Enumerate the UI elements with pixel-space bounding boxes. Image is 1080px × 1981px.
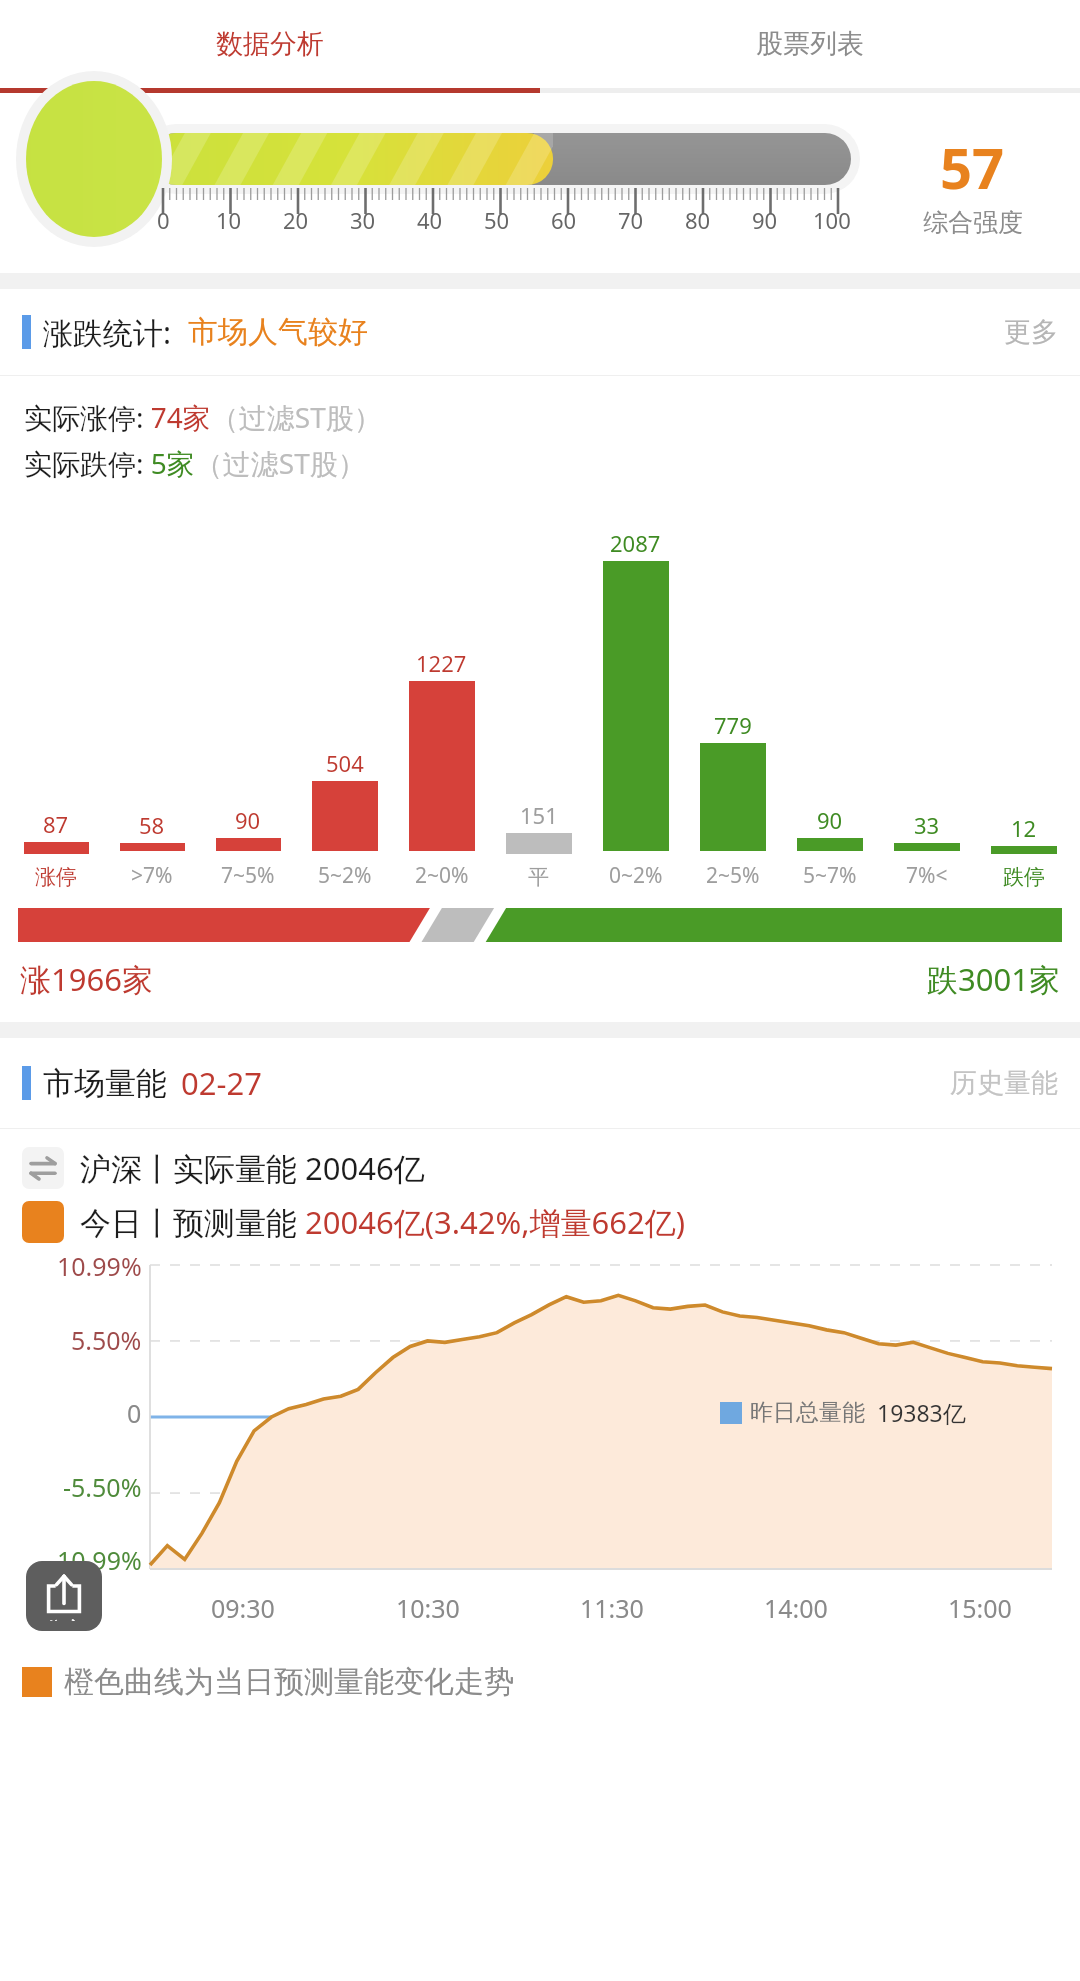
staticText: 30 [350, 205, 376, 235]
staticText: 0 [127, 1396, 142, 1430]
staticText: 7%< [906, 861, 948, 890]
staticText: 历史量能 [950, 1066, 1058, 1100]
staticText: 更多 [1004, 315, 1058, 349]
staticText: 19383亿 [877, 1397, 966, 1428]
staticText: 10:30 [396, 1591, 460, 1625]
staticText: 市场人气较好 [188, 313, 368, 351]
staticText: 14:00 [764, 1591, 828, 1625]
staticText: 平 [528, 864, 549, 890]
staticText: 涨跌统计: [43, 312, 172, 353]
staticText: 50 [484, 205, 510, 235]
staticText: 151 [520, 800, 558, 830]
staticText: 实际涨停: 74家（过滤ST股） [24, 398, 382, 436]
staticText: 7~5% [221, 861, 275, 890]
staticText: 10.99% [57, 1249, 142, 1283]
button[interactable]: 切换量能 [22, 1147, 64, 1189]
staticText: 分享 [44, 1617, 84, 1621]
staticText: 40 [417, 205, 443, 235]
staticText: 2~5% [706, 861, 760, 890]
staticText: 02-27 [181, 1062, 262, 1104]
staticText: 跌3001家 [927, 958, 1060, 1000]
staticText: 综合强度 [923, 207, 1023, 238]
staticText: 数据分析 [216, 27, 324, 61]
staticText: 涨停 [35, 864, 77, 890]
staticText: 5.50% [71, 1323, 142, 1357]
staticText: 10 [216, 205, 242, 235]
staticText: 09:30 [211, 1591, 275, 1625]
staticText: 504 [326, 748, 364, 778]
staticText: 11:30 [580, 1591, 644, 1625]
button[interactable]: 分享 [26, 1561, 102, 1631]
staticText: 20 [283, 205, 309, 235]
staticText: 0 [157, 205, 170, 235]
staticText: 70 [618, 205, 644, 235]
staticText: 779 [714, 710, 752, 740]
staticText: 0~2% [609, 861, 663, 890]
staticText: 100 [813, 205, 851, 235]
button[interactable]: 股票列表 [540, 0, 1080, 88]
staticText: -10.99% [49, 1543, 142, 1577]
staticText: 跌停 [1003, 864, 1045, 890]
staticText: 沪深丨实际量能 20046亿 [80, 1147, 425, 1189]
staticText: 2087 [610, 528, 661, 558]
staticText: 股票列表 [756, 27, 864, 61]
button[interactable]: 市场量能 [0, 1038, 1080, 1128]
staticText: 80 [685, 205, 711, 235]
staticText: 58 [139, 810, 165, 840]
staticText: 57 [940, 129, 1005, 205]
staticText: 5~7% [803, 861, 857, 890]
button[interactable]: 数据分析 [0, 0, 540, 88]
button[interactable]: 涨跌统计: [0, 289, 1080, 375]
staticText: 87 [43, 809, 69, 839]
staticText: -5.50% [63, 1470, 142, 1504]
staticText: 涨1966家 [20, 958, 153, 1000]
staticText: >7% [131, 861, 173, 890]
staticText: 今日丨预测量能 20046亿(3.42%,增量662亿) [80, 1201, 686, 1243]
staticText: 33 [914, 810, 940, 840]
staticText: 2~0% [415, 861, 469, 890]
staticText: 12 [1011, 813, 1037, 843]
staticText: 60 [551, 205, 577, 235]
staticText: 市场量能 [43, 1064, 167, 1103]
staticText: 90 [235, 805, 261, 835]
staticText: 90 [752, 205, 778, 235]
staticText: 90 [817, 805, 843, 835]
staticText: 5~2% [318, 861, 372, 890]
staticText: 橙色曲线为当日预测量能变化走势 [64, 1663, 514, 1701]
staticText: 昨日总量能 [750, 1398, 865, 1427]
staticText: 15:00 [948, 1591, 1012, 1625]
staticText: 实际跌停: 5家（过滤ST股） [24, 444, 366, 482]
staticText: 1227 [416, 648, 467, 678]
